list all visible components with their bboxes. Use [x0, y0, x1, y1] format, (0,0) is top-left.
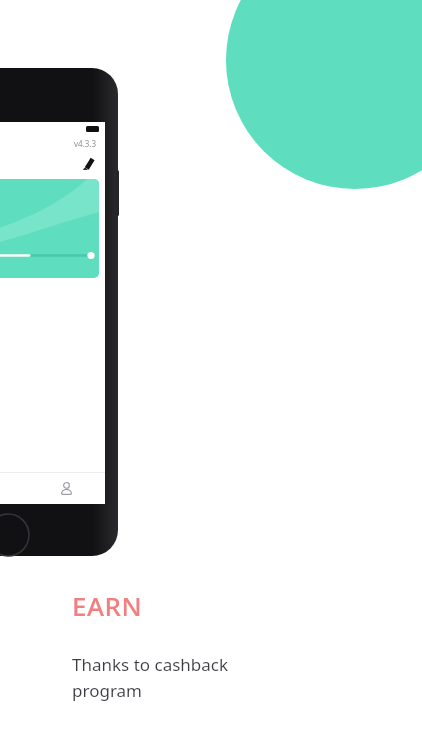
button[interactable]: Profile	[53, 475, 79, 501]
button[interactable]: Edit	[79, 153, 99, 173]
button[interactable]: Balance	[0, 179, 99, 278]
staticText: Thanks to cashback program	[72, 653, 229, 702]
staticText: v4.3.3	[74, 138, 97, 149]
staticText: EARN	[72, 588, 143, 623]
